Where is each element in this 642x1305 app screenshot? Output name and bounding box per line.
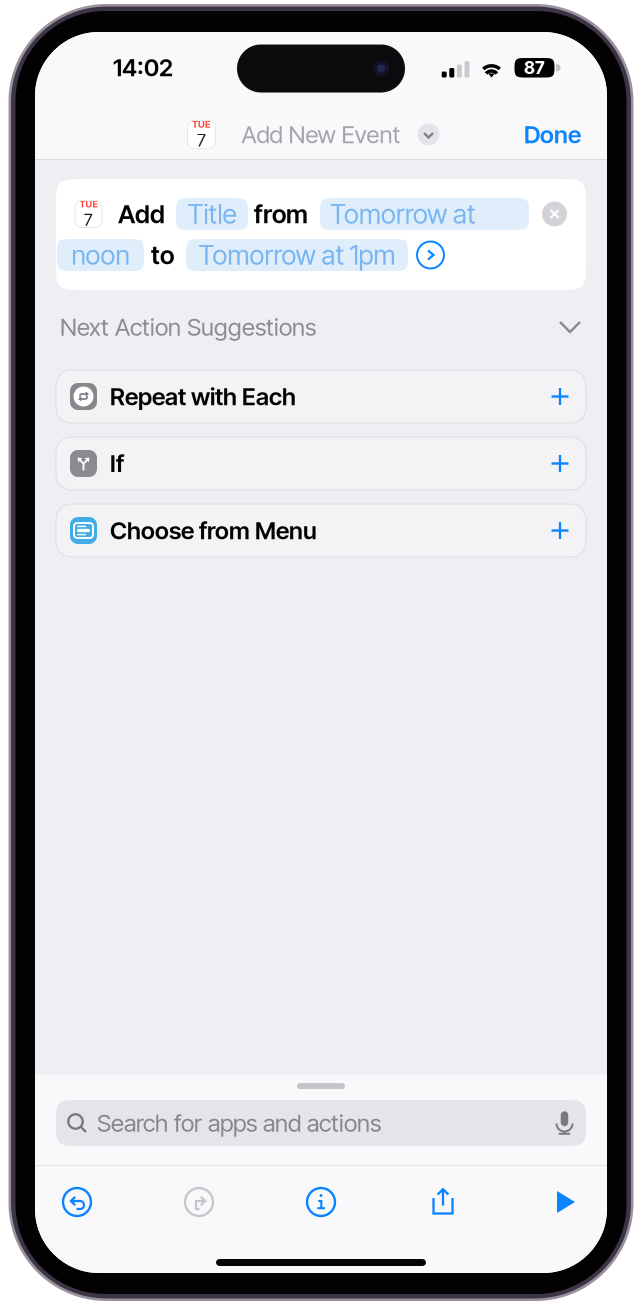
staticText: Done xyxy=(524,120,581,149)
staticText: Search for apps and actions xyxy=(97,1108,381,1137)
button[interactable]: If xyxy=(56,437,586,490)
staticText: 7 xyxy=(197,130,206,151)
staticText: TUE xyxy=(79,198,97,210)
button[interactable]: Choose from Menu xyxy=(56,504,586,557)
button[interactable]: Undo xyxy=(54,1183,100,1221)
button[interactable]: Done xyxy=(516,112,589,157)
staticText: noon xyxy=(71,239,129,271)
button[interactable]: Details xyxy=(298,1183,344,1221)
staticText: 87 xyxy=(524,57,545,78)
staticText: If xyxy=(110,449,124,478)
staticText: Next Action Suggestions xyxy=(60,312,316,341)
button[interactable]: TUE xyxy=(187,120,439,149)
staticText: Title xyxy=(187,198,236,230)
staticText: Tomorrow at xyxy=(330,198,475,230)
button[interactable]: Redo xyxy=(176,1183,222,1221)
button[interactable]: Remove action xyxy=(542,201,567,226)
staticText: Repeat with Each xyxy=(110,382,296,411)
staticText: Add New Event xyxy=(241,120,400,149)
staticText: TUE xyxy=(192,118,211,130)
button[interactable]: Run shortcut xyxy=(542,1183,588,1221)
staticText: 14:02 xyxy=(113,53,173,82)
staticText: Choose from Menu xyxy=(110,516,317,545)
button[interactable]: Share xyxy=(420,1183,466,1221)
button[interactable]: Next Action Suggestions xyxy=(56,312,586,342)
button[interactable]: Search for apps and actions xyxy=(56,1100,586,1146)
staticText: to xyxy=(151,240,174,270)
staticText: 7 xyxy=(84,210,93,230)
staticText: Add xyxy=(118,199,165,229)
button[interactable]: Show details xyxy=(417,241,444,268)
button[interactable]: Repeat with Each xyxy=(56,370,586,423)
staticText: Tomorrow at 1pm xyxy=(198,239,395,271)
staticText: from xyxy=(254,199,308,229)
